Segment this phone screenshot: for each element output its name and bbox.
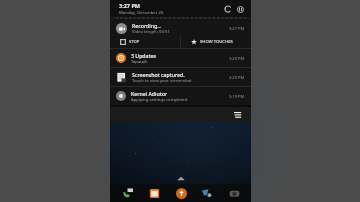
button[interactable]: Recording... <box>110 19 251 48</box>
button[interactable]: Calendar <box>145 184 163 202</box>
button[interactable]: 3:27 PM <box>110 0 251 17</box>
staticText: 3:27 PM <box>229 26 245 31</box>
button[interactable]: Clear all notifications <box>110 107 251 121</box>
staticText: 3:25 PM <box>229 75 245 80</box>
staticText: Kernel Adiutor <box>131 90 168 97</box>
button[interactable]: 3 Updates <box>110 49 251 67</box>
staticText: Recording... <box>132 22 162 29</box>
staticText: Touch to view your screenshot. <box>132 78 193 84</box>
button[interactable]: STOP <box>110 36 180 48</box>
staticText: STOP <box>129 39 140 45</box>
staticText: Applying settings completed. <box>131 97 189 103</box>
button[interactable]: Phone <box>119 184 137 202</box>
button[interactable]: Messaging <box>198 184 216 202</box>
button[interactable]: Settings <box>236 5 244 13</box>
staticText: 3:19 PM <box>229 94 245 99</box>
staticText: Video length: 00:51 <box>132 29 170 35</box>
staticText: 3:25 PM <box>229 56 245 61</box>
other: Clear all notifications <box>234 110 243 119</box>
staticText: 3:27 PM <box>119 2 141 9</box>
button[interactable]: Screen rotation <box>224 5 232 13</box>
button[interactable]: Camera <box>225 184 243 202</box>
button[interactable]: Tapatalk <box>172 184 190 202</box>
button[interactable]: Kernel Adiutor <box>110 87 251 105</box>
staticText: SHOW TOUCHES <box>200 39 233 45</box>
staticText: Monday, December 26 <box>119 10 164 16</box>
button[interactable]: Screenshot captured. <box>110 68 251 86</box>
staticText: Tapatalk <box>131 59 148 65</box>
staticText: Screenshot captured. <box>132 71 185 78</box>
staticText: 3 Updates <box>131 52 157 59</box>
button[interactable]: SHOW TOUCHES <box>181 36 251 48</box>
